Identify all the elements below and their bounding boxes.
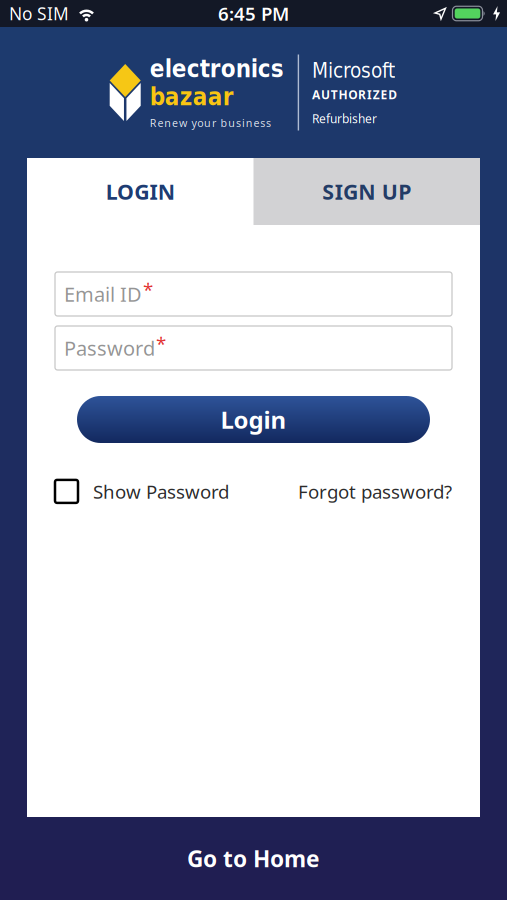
staticText: bazaar <box>150 83 234 111</box>
staticText: Renew your business <box>150 116 271 130</box>
staticText: LOGIN <box>106 177 175 206</box>
staticText: Refurbisher <box>312 110 377 126</box>
staticText: Password <box>64 335 155 361</box>
staticText: Microsoft <box>312 58 395 83</box>
staticText: No SIM <box>9 2 69 25</box>
staticText: electronics <box>150 55 284 83</box>
staticText: Show Password <box>93 479 229 504</box>
staticText: * <box>156 331 166 356</box>
staticText: * <box>143 277 153 302</box>
staticText: 6:45 PM <box>218 1 289 26</box>
staticText: Forgot password? <box>298 479 452 504</box>
staticText: Login <box>220 404 286 435</box>
staticText: SIGN UP <box>322 177 411 206</box>
staticText: Go to Home <box>187 843 320 873</box>
staticText: AUTHORIZED <box>312 87 397 102</box>
staticText: Email ID <box>64 281 142 307</box>
